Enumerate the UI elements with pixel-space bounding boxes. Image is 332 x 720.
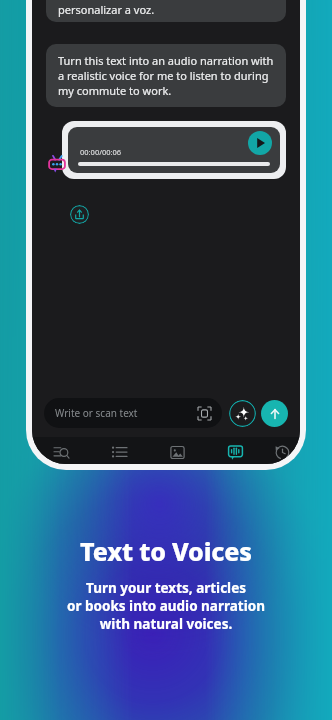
staticText: Turn this text into an audio narration w… <box>58 53 274 98</box>
button[interactable]: personalizar a voz. <box>46 0 286 22</box>
staticText: Find it out <box>41 463 82 464</box>
staticText: 00:00/00:06 <box>80 147 122 157</box>
staticText: History <box>268 463 297 464</box>
button[interactable]: Find it out <box>32 443 90 464</box>
staticText: Turn your texts, articles or books into … <box>67 579 265 633</box>
button[interactable]: Send <box>261 400 288 427</box>
staticText: personalizar a voz. <box>58 2 155 17</box>
staticText: Text to Voices <box>80 534 252 568</box>
button[interactable]: Write or scan text <box>44 398 222 428</box>
button[interactable]: Share <box>70 205 89 224</box>
button[interactable]: Prompts <box>90 443 148 464</box>
button[interactable]: Turn this text into an audio narration w… <box>46 44 286 107</box>
staticText: Write or scan text <box>55 406 198 420</box>
button[interactable]: Image <box>148 443 206 464</box>
button[interactable]: AI assist <box>229 400 256 427</box>
button[interactable]: Play <box>248 131 272 155</box>
button[interactable]: History <box>264 443 300 464</box>
button[interactable]: 00:00/00:06 <box>68 127 280 173</box>
button[interactable]: Voice <box>206 443 264 464</box>
